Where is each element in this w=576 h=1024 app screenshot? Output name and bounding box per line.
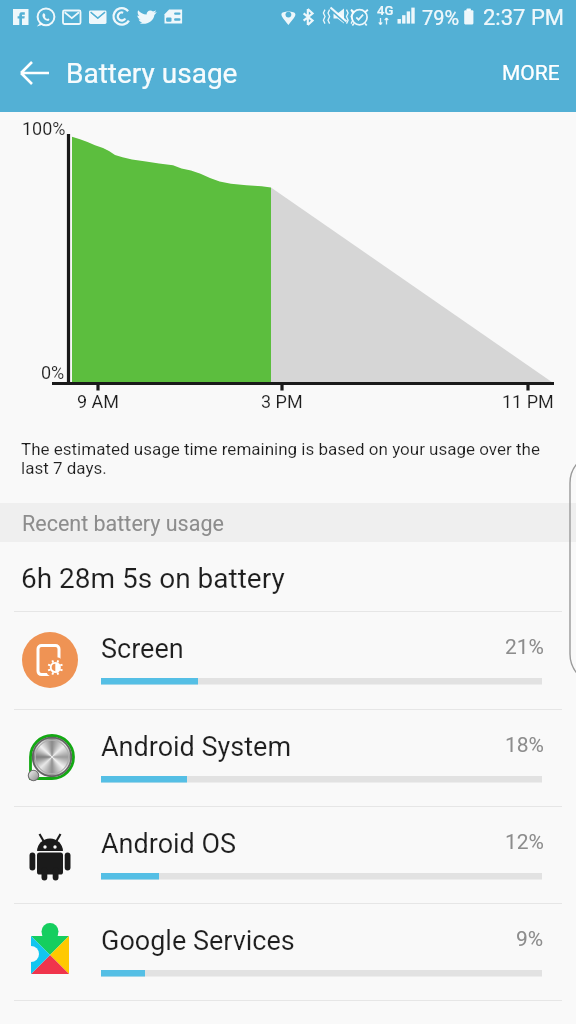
button[interactable]: Android System: [0, 709, 576, 806]
staticText: 2:37 PM: [483, 5, 564, 31]
staticText: 0%: [41, 362, 65, 383]
staticText: MORE: [502, 61, 560, 86]
staticText: 9 AM: [77, 391, 120, 412]
button[interactable]: MORE: [486, 50, 576, 96]
staticText: Android System: [101, 731, 292, 763]
staticText: last 7 days.: [21, 458, 107, 478]
staticText: The estimated usage time remaining is ba…: [21, 439, 540, 459]
staticText: Battery usage: [66, 57, 238, 90]
staticText: Google Services: [101, 925, 295, 957]
button[interactable]: Android OS: [0, 806, 576, 903]
staticText: 4G: [377, 3, 394, 18]
staticText: 6h 28m 5s on battery: [21, 562, 285, 595]
staticText: 18%: [505, 733, 544, 758]
button[interactable]: Google Play: [0, 1000, 576, 1024]
staticText: Screen: [101, 633, 184, 665]
staticText: 11 PM: [502, 391, 554, 412]
button[interactable]: Back: [12, 50, 58, 96]
staticText: 21%: [505, 635, 544, 660]
button[interactable]: Google Services: [0, 903, 576, 1000]
button[interactable]: Screen: [0, 611, 576, 708]
staticText: Android OS: [101, 828, 237, 860]
staticText: 100%: [22, 118, 66, 139]
staticText: 12%: [505, 830, 544, 855]
staticText: 79%: [422, 6, 460, 29]
staticText: 3 PM: [261, 391, 303, 412]
staticText: Recent battery usage: [22, 511, 224, 536]
staticText: 9%: [516, 927, 544, 952]
